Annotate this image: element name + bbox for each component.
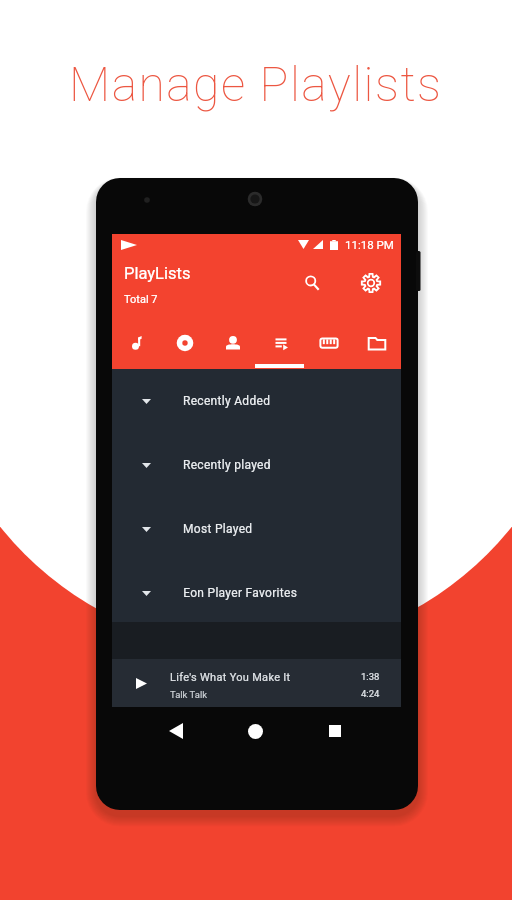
button[interactable]: Recent apps [315,711,355,751]
button[interactable]: Play [126,668,157,699]
button[interactable]: Search [294,265,330,301]
button[interactable]: Albums [161,317,209,369]
button[interactable]: Artists [209,317,257,369]
staticText: 4:24 [361,688,380,699]
staticText: Total 7 [124,293,158,306]
button[interactable]: Songs [112,317,161,369]
staticText: Life's What You Make It [170,671,291,684]
button[interactable]: Settings [353,265,389,301]
staticText: Manage Playlists [69,56,443,112]
staticText: 11:18 PM [345,238,394,251]
button[interactable]: Play [112,659,401,707]
button[interactable]: Folders [353,317,401,369]
staticText: Talk Talk [170,689,208,700]
staticText: Eon Player Favorites [183,586,297,600]
button[interactable]: Genres [305,317,353,369]
button[interactable]: Playlists [257,317,305,369]
button[interactable]: Eon Player Favorites [112,561,401,625]
button[interactable]: Most Played [112,497,401,561]
staticText: Recently played [183,458,271,472]
staticText: Recently Added [183,394,271,408]
staticText: 1:38 [361,671,380,682]
button[interactable]: Recently Added [112,369,401,433]
staticText: PlayLists [124,264,191,283]
button[interactable]: Recently played [112,433,401,497]
staticText: Most Played [183,522,253,536]
button[interactable]: Home [235,711,275,751]
button[interactable]: Back [156,711,196,751]
